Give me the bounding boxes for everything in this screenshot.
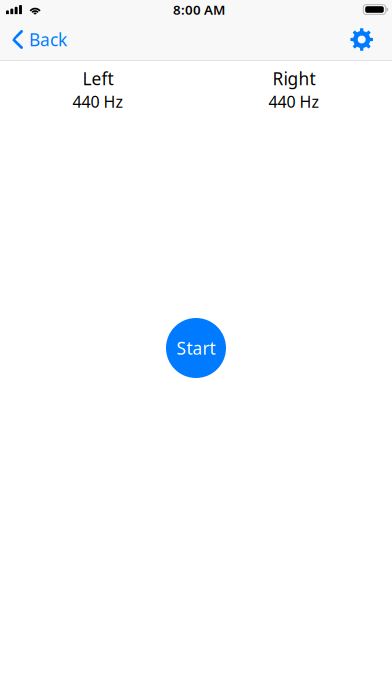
staticText: Right bbox=[272, 67, 315, 90]
staticText: 440 Hz bbox=[72, 91, 123, 112]
staticText: Start bbox=[176, 336, 215, 359]
staticText: Left bbox=[82, 67, 113, 90]
button[interactable]: Back bbox=[0, 19, 77, 60]
button[interactable]: Start bbox=[166, 318, 226, 378]
staticText: 440 Hz bbox=[268, 91, 319, 112]
staticText: 8:00 AM bbox=[173, 1, 225, 18]
staticText: Back bbox=[29, 28, 67, 51]
button[interactable]: Settings bbox=[342, 19, 381, 60]
